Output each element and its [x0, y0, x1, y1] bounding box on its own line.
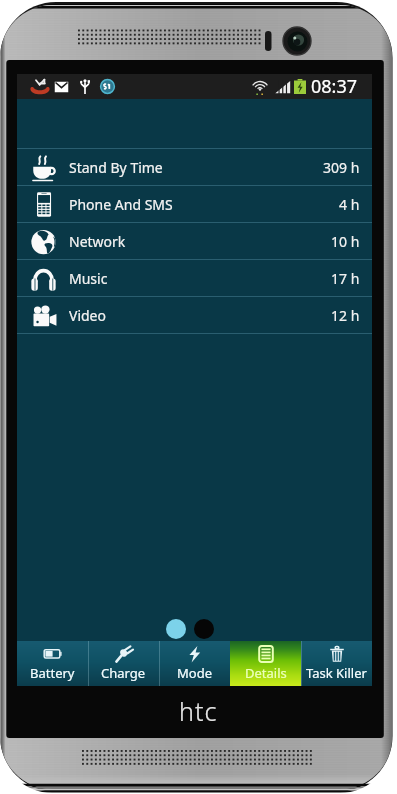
staticText: Task Killer — [306, 664, 367, 682]
staticText: 4 h — [339, 195, 360, 214]
staticText: 12 h — [331, 306, 360, 325]
button[interactable]: Details — [230, 641, 301, 686]
staticText: 10 h — [331, 232, 360, 251]
staticText: Network — [69, 232, 126, 251]
staticText: htc — [179, 694, 218, 728]
staticText: 08:37 — [311, 74, 358, 99]
staticText: Video — [69, 306, 106, 325]
button[interactable]: Video — [17, 297, 372, 333]
staticText: 17 h — [331, 269, 360, 288]
button[interactable]: Stand By Time — [17, 149, 372, 185]
button[interactable]: Network — [17, 223, 372, 259]
staticText: Details — [245, 664, 287, 682]
button[interactable]: Music — [17, 260, 372, 296]
button[interactable]: Task Killer — [301, 641, 372, 686]
staticText: Stand By Time — [69, 158, 163, 177]
staticText: 309 h — [323, 158, 360, 177]
button[interactable]: Battery — [17, 641, 88, 686]
staticText: Charge — [101, 664, 146, 682]
button[interactable]: Phone And SMS — [17, 186, 372, 222]
staticText: Music — [69, 269, 108, 288]
staticText: Mode — [177, 664, 212, 682]
staticText: Phone And SMS — [69, 195, 173, 214]
button[interactable]: Charge — [88, 641, 159, 686]
staticText: Battery — [30, 664, 75, 682]
button[interactable]: Mode — [159, 641, 230, 686]
